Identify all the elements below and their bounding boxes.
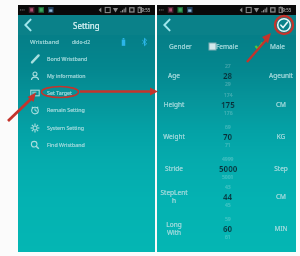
button[interactable]: Stride [157,154,296,182]
staticText: 44 [223,191,233,202]
staticText: 27 [225,63,231,70]
staticText: Age [159,71,189,80]
button[interactable]: Gender [157,37,296,55]
button[interactable]: Confirm [274,15,294,35]
staticText: My information [47,72,86,79]
staticText: Female [216,42,239,51]
staticText: 29 [225,81,231,88]
staticText: 43 [225,184,231,191]
staticText: Set Target [47,89,72,96]
button[interactable]: Remain Setting [18,101,155,118]
staticText: 71 [225,142,231,149]
staticText: Remain Setting [47,106,85,113]
staticText: Step [261,164,300,173]
button[interactable]: My information [18,67,155,84]
staticText: Weight [159,132,189,141]
staticText: 70 [223,131,233,142]
staticText: 69 [225,124,231,131]
staticText: Stride [159,164,189,173]
button[interactable]: Age [157,61,296,89]
staticText: MIN [261,224,300,233]
staticText: CM [261,100,300,109]
staticText: 59 [225,216,231,223]
button[interactable]: StepLenth [157,182,296,210]
button[interactable]: Back [18,15,38,35]
staticText: System Setting [47,124,84,131]
staticText: 4999 [222,156,234,163]
staticText: KG [261,132,300,141]
staticText: 45 [225,202,231,209]
staticText: Find Wristband [47,141,85,148]
staticText: StepLenth [159,188,189,205]
button[interactable]: Set Target [18,84,155,101]
staticText: 60 [223,223,233,234]
staticText: CM [261,192,300,201]
staticText: Gender [169,42,192,51]
button[interactable]: System Setting [18,119,155,136]
staticText: 5001 [222,174,234,181]
staticText: Long With [159,220,189,237]
staticText: 19:55 [139,7,151,13]
staticText: Male [270,42,285,51]
staticText: Setting [73,20,100,31]
staticText: 61 [225,234,231,241]
staticText: 19:55 [280,7,292,13]
staticText: 174 [224,92,233,99]
button[interactable]: Bond Wristband [18,50,155,67]
button[interactable]: Find Wristband [18,136,155,153]
button[interactable]: Back [157,15,177,35]
staticText: Bond Wristband [47,55,88,62]
staticText: dido-d2 [72,39,91,46]
staticText: Height [159,100,189,109]
button[interactable]: Long With [157,214,296,242]
staticText: 176 [224,110,233,117]
staticText: Ageunit [261,71,300,80]
staticText: 175 [221,99,235,110]
button[interactable]: Weight [157,122,296,150]
staticText: Wristband [30,38,60,46]
staticText: 5000 [219,163,238,174]
staticText: 28 [223,70,233,81]
button[interactable]: Height [157,90,296,118]
